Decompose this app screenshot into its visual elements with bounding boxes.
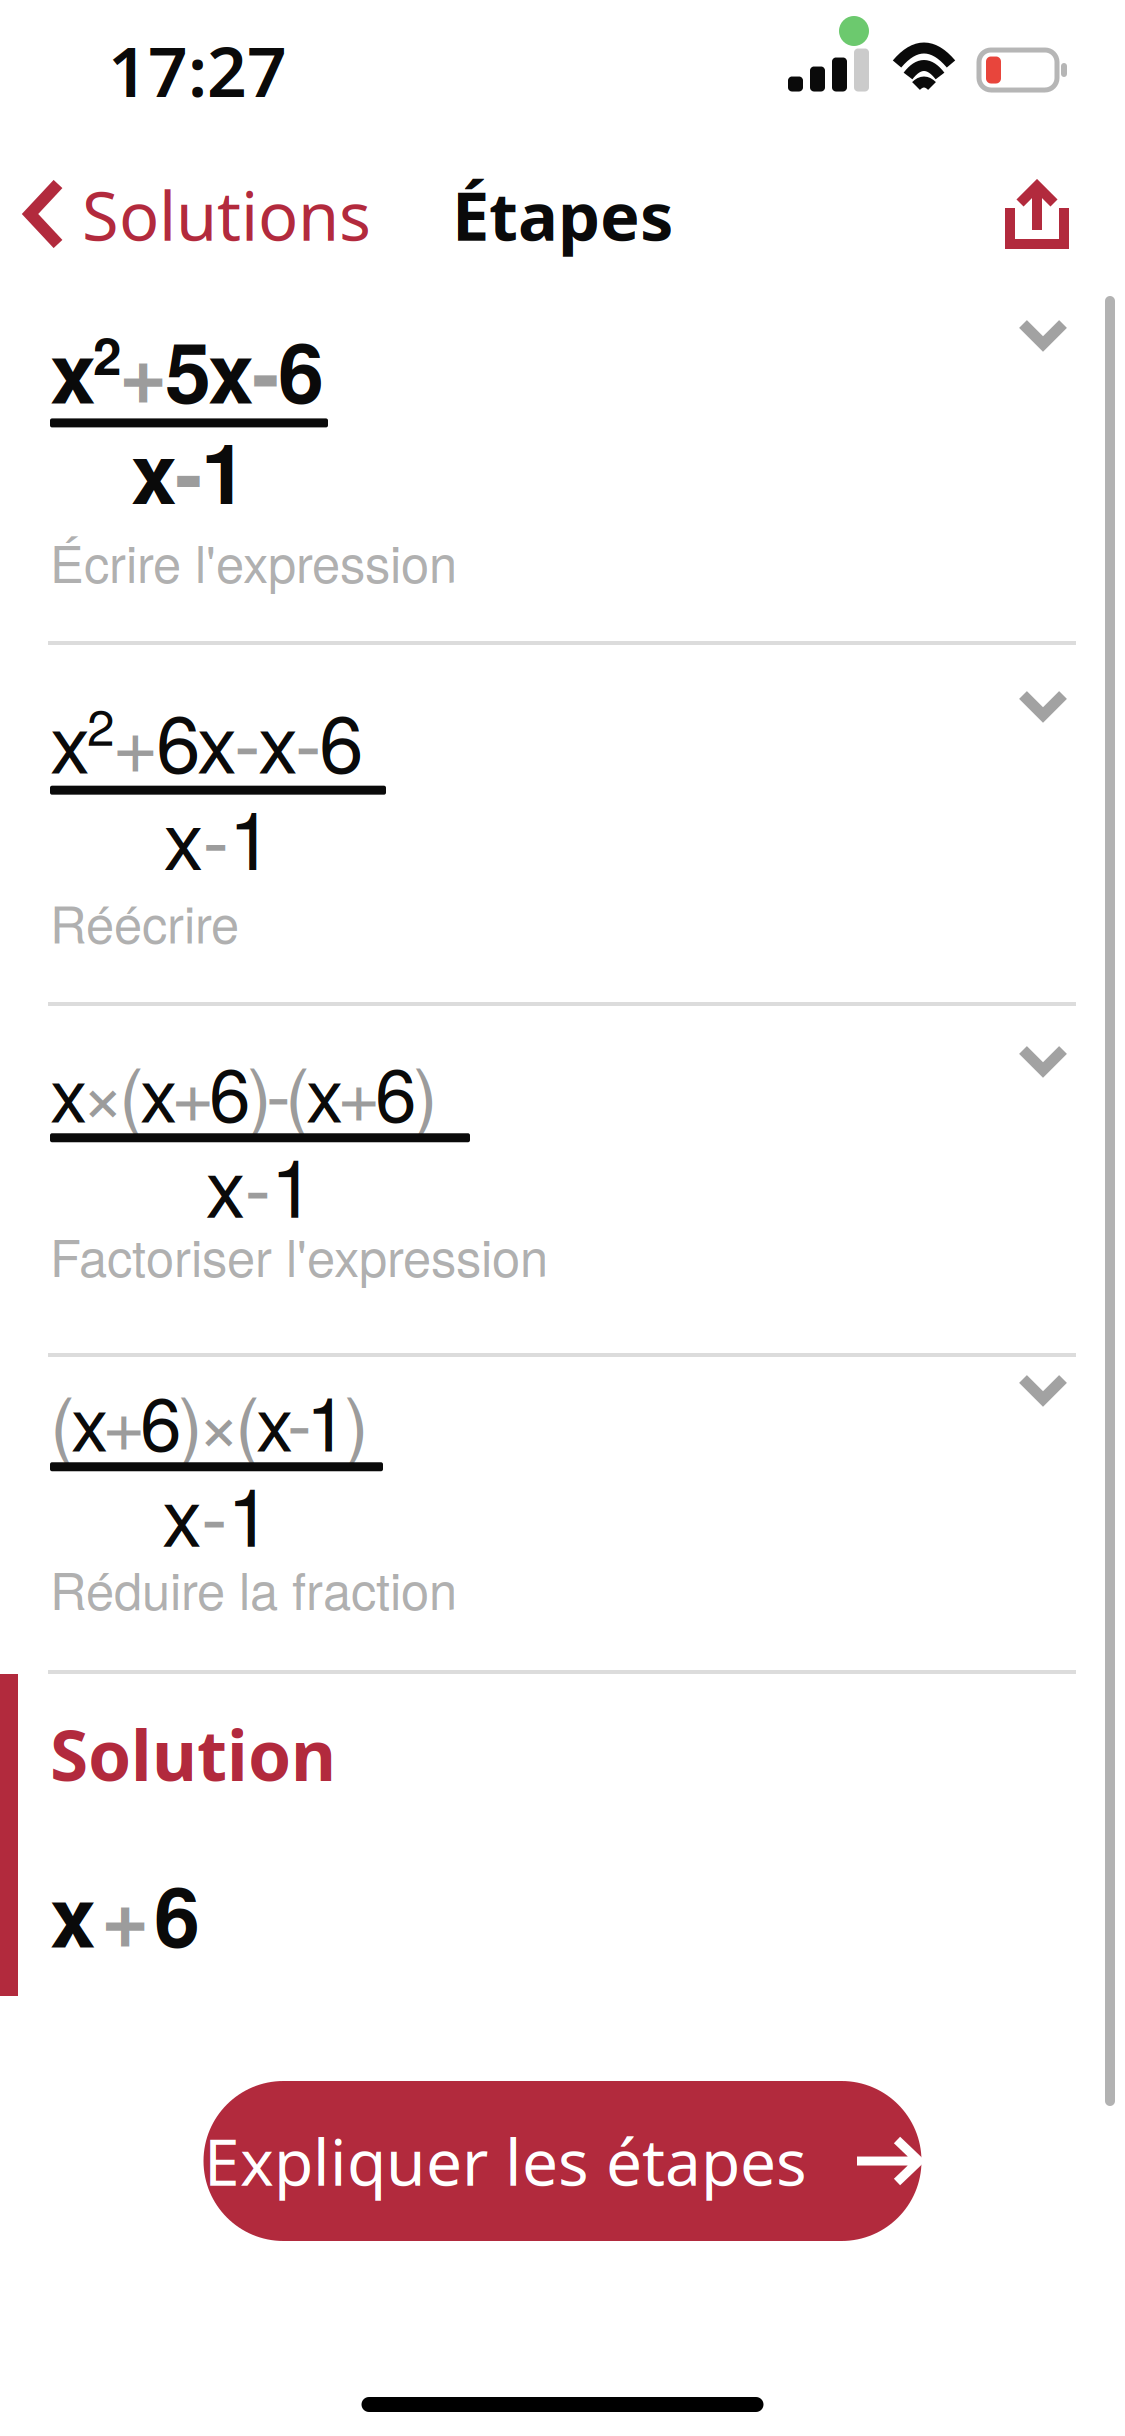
- staticText: x - 1: [205, 1127, 314, 1239]
- staticText: Expliquer les étapes: [204, 2118, 807, 2203]
- staticText: Solutions: [82, 171, 371, 259]
- staticText: x - 1: [163, 780, 272, 891]
- staticText: (x + 6) × (x - 1): [50, 1367, 369, 1471]
- button[interactable]: x2 + 5x - 6: [0, 290, 1125, 641]
- staticText: x + 6: [50, 1856, 200, 1971]
- button[interactable]: (x + 6) × (x - 1): [0, 1357, 1125, 1670]
- button[interactable]: Expliquer les étapes: [203, 2081, 921, 2241]
- staticText: x2 + 6x - x - 6: [50, 683, 363, 795]
- staticText: 17:27: [108, 24, 287, 116]
- staticText: Étapes: [452, 171, 673, 259]
- staticText: Factoriser l'expression: [50, 1219, 548, 1291]
- button[interactable]: x × (x + 6) - (x + 6): [0, 1006, 1125, 1353]
- staticText: x2 + 5x - 6: [50, 312, 324, 427]
- staticText: Solution: [50, 1708, 336, 1800]
- staticText: x - 1: [131, 412, 247, 528]
- staticText: Réduire la fraction: [50, 1552, 457, 1624]
- staticText: x × (x + 6) - (x + 6): [50, 1038, 438, 1142]
- staticText: x - 1: [162, 1456, 271, 1568]
- button[interactable]: Solutions: [0, 149, 371, 281]
- staticText: Réécrire: [50, 885, 239, 958]
- button[interactable]: x2 + 6x - x - 6: [0, 645, 1125, 1002]
- button[interactable]: Share: [1005, 164, 1125, 266]
- staticText: Écrire l'expression: [50, 525, 457, 597]
